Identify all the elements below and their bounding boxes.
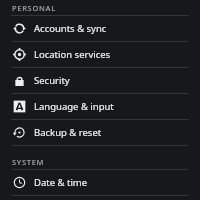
staticText: Date & time [34, 176, 88, 189]
button[interactable]: Location services [0, 42, 200, 67]
button[interactable]: Language & input [0, 94, 200, 119]
staticText: SYSTEM [12, 157, 45, 167]
button[interactable]: Backup & reset [0, 120, 200, 145]
button[interactable]: Accounts & sync [0, 16, 200, 41]
staticText: Security [34, 74, 70, 87]
staticText: Location services [34, 48, 111, 61]
staticText: Backup & reset [34, 126, 102, 139]
button[interactable]: Security [0, 68, 200, 93]
staticText: Language & input [34, 100, 114, 113]
button[interactable]: Date & time [0, 170, 200, 195]
staticText: Accounts & sync [34, 22, 107, 35]
staticText: PERSONAL [12, 3, 56, 13]
